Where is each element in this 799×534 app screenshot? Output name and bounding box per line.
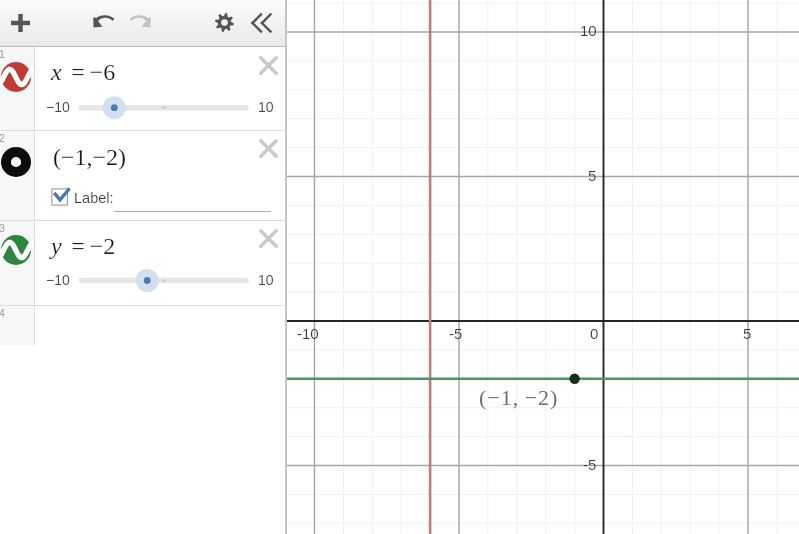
staticText: (−1,−2)	[53, 144, 127, 171]
staticText: -5	[449, 325, 463, 342]
staticText: −10	[46, 272, 70, 288]
staticText: x = −6	[51, 59, 116, 86]
button[interactable]: Delete expression	[256, 136, 281, 161]
staticText: -10	[297, 325, 319, 342]
staticText: 2	[0, 132, 5, 144]
button[interactable]: Delete expression	[256, 53, 281, 78]
button[interactable]: Delete expression	[256, 226, 281, 251]
staticText: 10	[258, 99, 274, 115]
staticText: 3	[0, 222, 5, 234]
button[interactable]: Settings	[204, 0, 244, 47]
button[interactable]: Show label	[51, 187, 71, 207]
staticText: 0	[590, 325, 599, 342]
button[interactable]: Undo	[84, 0, 124, 47]
staticText: (−1, −2)	[479, 385, 559, 409]
staticText: 5	[743, 325, 752, 342]
staticText: 10	[580, 22, 597, 39]
staticText: 4	[0, 307, 5, 319]
staticText: 10	[258, 272, 274, 288]
staticText: Label:	[74, 190, 114, 206]
staticText: 5	[588, 167, 597, 184]
staticText: −10	[46, 99, 70, 115]
button[interactable]: Redo	[120, 0, 160, 47]
button[interactable]: Add expression	[0, 0, 40, 47]
staticText: 1	[0, 48, 5, 60]
staticText: -5	[583, 456, 597, 473]
button[interactable]: Collapse panel	[241, 0, 281, 47]
staticText: y = −2	[51, 233, 116, 260]
